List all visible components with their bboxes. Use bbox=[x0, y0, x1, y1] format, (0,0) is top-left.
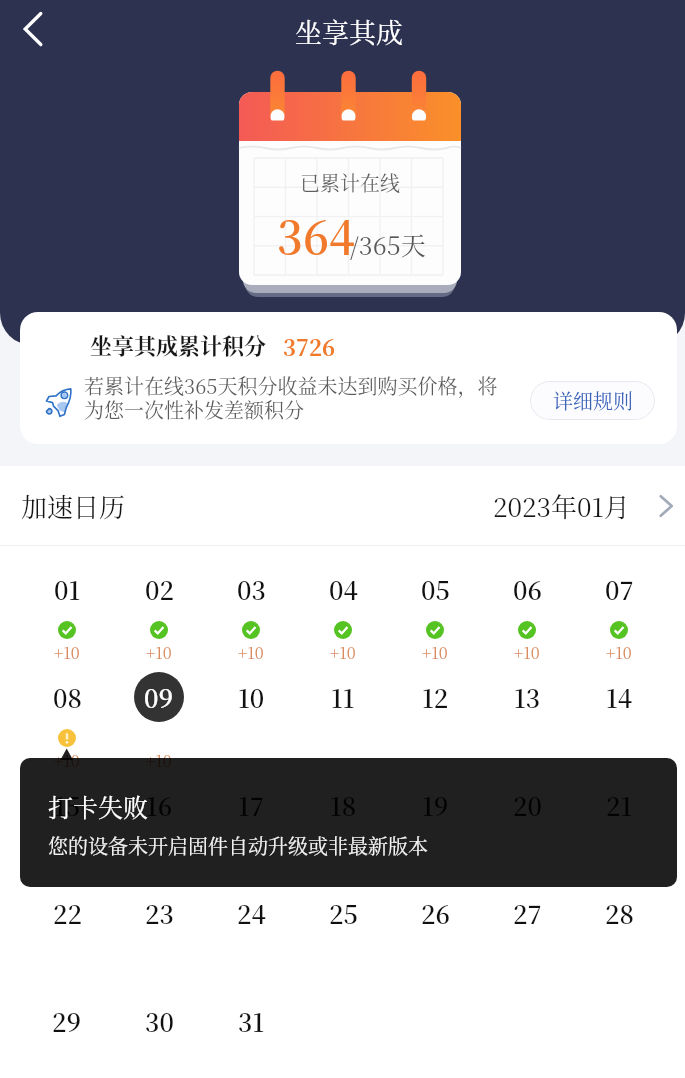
staticText: 02 bbox=[145, 571, 174, 607]
staticText: +10 bbox=[238, 641, 264, 664]
button[interactable]: 08 bbox=[20, 672, 113, 780]
staticText: +10 bbox=[146, 749, 172, 772]
staticText: +10 bbox=[146, 641, 172, 664]
staticText: 364 bbox=[277, 202, 356, 267]
staticText: 16 bbox=[146, 787, 173, 823]
button[interactable]: 29 bbox=[20, 996, 113, 1078]
staticText: 20 bbox=[513, 787, 542, 823]
button[interactable]: 22 bbox=[20, 888, 113, 996]
button[interactable]: 10 bbox=[205, 672, 297, 780]
staticText: 08 bbox=[53, 679, 82, 715]
staticText: 19 bbox=[422, 787, 449, 823]
staticText: 21 bbox=[606, 787, 633, 823]
staticText: +10 bbox=[54, 749, 80, 772]
staticText: +10 bbox=[422, 641, 448, 664]
button[interactable]: 04 bbox=[297, 564, 389, 672]
staticText: 2023年01月 bbox=[493, 487, 630, 524]
staticText: 13 bbox=[514, 679, 541, 715]
staticText: 12 bbox=[422, 679, 449, 715]
staticText: 06 bbox=[513, 571, 542, 607]
staticText: 3726 bbox=[283, 331, 336, 363]
staticText: 11 bbox=[331, 679, 355, 715]
staticText: 31 bbox=[238, 1003, 265, 1039]
button[interactable]: 14 bbox=[573, 672, 665, 780]
button[interactable]: 11 bbox=[297, 672, 389, 780]
staticText: 坐享其成 bbox=[295, 12, 403, 51]
button[interactable]: 17 bbox=[205, 780, 297, 888]
staticText: 23 bbox=[145, 895, 174, 931]
button[interactable]: 09 bbox=[113, 672, 205, 780]
staticText: 29 bbox=[52, 1003, 82, 1039]
button[interactable]: 30 bbox=[113, 996, 205, 1078]
button[interactable]: 16 bbox=[113, 780, 205, 888]
staticText: 03 bbox=[237, 571, 266, 607]
button[interactable]: 27 bbox=[481, 888, 573, 996]
staticText: 14 bbox=[606, 679, 633, 715]
staticText: 22 bbox=[53, 895, 82, 931]
staticText: 10 bbox=[238, 679, 265, 715]
staticText: 打卡失败 bbox=[48, 788, 149, 824]
button[interactable]: 25 bbox=[297, 888, 389, 996]
staticText: 若累计在线365天积分收益未达到购买价格，将 为您一次性补发差额积分 bbox=[84, 371, 534, 424]
button[interactable]: 03 bbox=[205, 564, 297, 672]
button[interactable]: 15 bbox=[20, 780, 113, 888]
staticText: 坐享其成累计积分 bbox=[90, 329, 267, 361]
button[interactable]: 28 bbox=[573, 888, 665, 996]
button[interactable]: 02 bbox=[113, 564, 205, 672]
staticText: +10 bbox=[606, 641, 632, 664]
button[interactable]: 20 bbox=[481, 780, 573, 888]
staticText: 15 bbox=[54, 787, 81, 823]
staticText: +10 bbox=[54, 641, 80, 664]
button[interactable]: 31 bbox=[205, 996, 297, 1078]
staticText: 07 bbox=[605, 571, 634, 607]
staticText: 详细规则 bbox=[553, 386, 633, 415]
staticText: 04 bbox=[329, 571, 358, 607]
button[interactable]: 详细规则 bbox=[530, 381, 655, 420]
button[interactable]: 18 bbox=[297, 780, 389, 888]
staticText: /365天 bbox=[350, 226, 426, 262]
staticText: 01 bbox=[54, 571, 81, 607]
staticText: 已累计在线 bbox=[300, 168, 400, 197]
staticText: 您的设备未开启固件自动升级或非最新版本 bbox=[48, 831, 428, 860]
button[interactable]: 2023年01月 bbox=[493, 487, 677, 524]
button[interactable]: 26 bbox=[389, 888, 481, 996]
button[interactable]: 24 bbox=[205, 888, 297, 996]
staticText: 加速日历 bbox=[21, 487, 126, 524]
button[interactable]: 01 bbox=[20, 564, 113, 672]
staticText: +10 bbox=[514, 641, 540, 664]
button[interactable]: 06 bbox=[481, 564, 573, 672]
button[interactable]: 21 bbox=[573, 780, 665, 888]
staticText: 25 bbox=[329, 895, 358, 931]
button[interactable]: 12 bbox=[389, 672, 481, 780]
button[interactable]: Back bbox=[8, 4, 58, 54]
button[interactable]: 05 bbox=[389, 564, 481, 672]
staticText: 30 bbox=[145, 1003, 174, 1039]
staticText: 17 bbox=[238, 787, 264, 823]
staticText: 05 bbox=[421, 571, 450, 607]
button[interactable]: 23 bbox=[113, 888, 205, 996]
staticText: 18 bbox=[330, 787, 357, 823]
button[interactable]: 07 bbox=[573, 564, 665, 672]
staticText: +10 bbox=[330, 641, 356, 664]
staticText: 24 bbox=[237, 895, 266, 931]
staticText: 28 bbox=[605, 895, 634, 931]
staticText: 26 bbox=[421, 895, 450, 931]
button[interactable]: 13 bbox=[481, 672, 573, 780]
button[interactable]: 19 bbox=[389, 780, 481, 888]
staticText: 09 bbox=[144, 679, 174, 715]
staticText: 27 bbox=[513, 895, 542, 931]
